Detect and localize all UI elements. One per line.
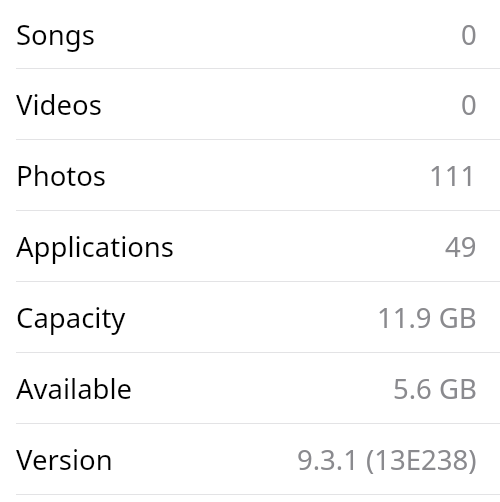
staticText: 111 <box>429 157 477 194</box>
staticText: 0 <box>461 86 477 123</box>
button[interactable]: Version <box>0 424 500 494</box>
staticText: Applications <box>16 228 175 265</box>
button[interactable]: Capacity <box>0 282 500 352</box>
button[interactable]: Videos <box>0 69 500 139</box>
staticText: 9.3.1 (13E238) <box>297 441 477 478</box>
button[interactable]: Photos <box>0 140 500 210</box>
staticText: Songs <box>16 16 95 53</box>
staticText: 11.9 GB <box>377 299 477 336</box>
staticText: 0 <box>461 16 477 53</box>
staticText: 5.6 GB <box>393 370 477 407</box>
button[interactable]: Available <box>0 353 500 423</box>
button[interactable]: Applications <box>0 211 500 281</box>
staticText: Available <box>16 370 133 407</box>
staticText: 49 <box>445 228 477 265</box>
staticText: Version <box>16 441 113 478</box>
button[interactable]: Songs <box>0 0 500 68</box>
staticText: Capacity <box>16 299 126 336</box>
staticText: Photos <box>16 157 107 194</box>
staticText: Videos <box>16 86 102 123</box>
